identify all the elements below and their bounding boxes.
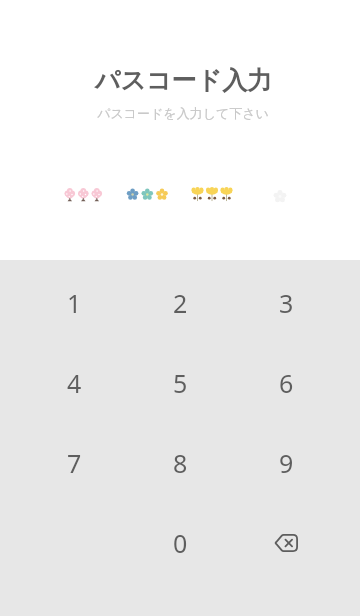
staticText: パスコード入力 — [7, 65, 360, 96]
button[interactable]: 4 — [21, 343, 127, 423]
staticText: 4 — [67, 366, 82, 400]
staticText: 9 — [279, 446, 294, 480]
button[interactable]: Delete — [233, 503, 339, 583]
button[interactable]: 7 — [21, 423, 127, 503]
button[interactable]: 0 — [127, 503, 233, 583]
button[interactable]: 8 — [127, 423, 233, 503]
staticText: 3 — [279, 286, 294, 320]
button[interactable]: 6 — [233, 343, 339, 423]
staticText: 2 — [173, 286, 188, 320]
staticText: 1 — [67, 286, 82, 320]
button[interactable]: 2 — [127, 263, 233, 343]
staticText: 5 — [173, 366, 188, 400]
staticText: パスコードを入力して下さい — [6, 105, 360, 121]
staticText: 6 — [279, 366, 294, 400]
button[interactable]: 3 — [233, 263, 339, 343]
button[interactable]: 1 — [21, 263, 127, 343]
staticText: 7 — [67, 446, 82, 480]
staticText: 8 — [173, 446, 188, 480]
staticText: 0 — [173, 526, 188, 560]
button[interactable]: 5 — [127, 343, 233, 423]
button[interactable]: 9 — [233, 423, 339, 503]
